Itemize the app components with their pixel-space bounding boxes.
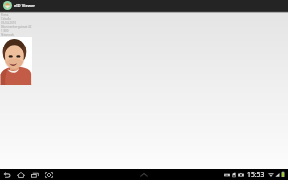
button[interactable]: Back — [0, 169, 14, 180]
staticText: 05-04-2010 — [1, 21, 17, 25]
button[interactable]: eID Viewer — [0, 0, 36, 11]
staticText: Ceballo — [1, 17, 12, 21]
staticText: 15:53 — [247, 170, 265, 179]
staticText: Fiona — [1, 13, 9, 17]
staticText: eID Viewer — [14, 3, 36, 8]
button[interactable]: Screenshot — [42, 169, 56, 180]
staticText: 1 800 — [1, 29, 9, 33]
button[interactable]: Home — [14, 169, 28, 180]
staticText: Bloemenbergstraat 42 — [1, 25, 32, 29]
staticText: Nitwoods — [1, 33, 14, 37]
button[interactable]: Recent apps — [28, 169, 42, 180]
